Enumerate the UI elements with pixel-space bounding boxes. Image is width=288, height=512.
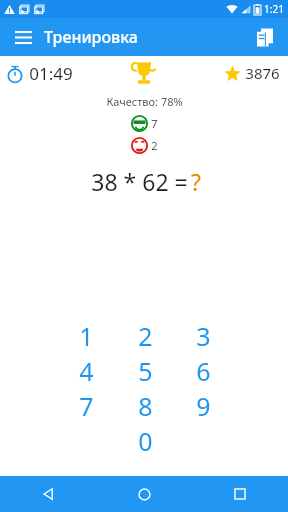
button[interactable]: 3 — [179, 318, 227, 353]
staticText: 9 — [196, 389, 211, 423]
staticText: 7 — [79, 389, 94, 423]
button[interactable]: Home — [96, 476, 192, 512]
staticText: 8 — [138, 389, 153, 423]
staticText: ? — [191, 166, 201, 197]
button[interactable]: Menu — [8, 22, 38, 52]
button[interactable]: 3876 — [224, 63, 280, 83]
button[interactable]: 01:49 — [6, 62, 73, 85]
staticText: 7 — [151, 116, 158, 131]
button[interactable]: Recent apps — [192, 476, 288, 512]
staticText: 2 — [151, 138, 158, 153]
button[interactable]: 7 — [131, 115, 158, 132]
button[interactable]: 5 — [121, 353, 169, 388]
button[interactable]: 2 — [121, 318, 169, 353]
staticText: 3876 — [245, 63, 280, 83]
button[interactable]: Reference book — [248, 21, 280, 53]
button[interactable]: 2 — [131, 137, 158, 154]
staticText: 5 — [138, 354, 153, 388]
staticText: 38 * 62 = — [88, 166, 191, 197]
staticText: 6 — [196, 354, 211, 388]
staticText: 1 — [79, 319, 94, 353]
button[interactable]: 9 — [179, 388, 227, 423]
staticText: 4 — [79, 354, 94, 388]
staticText: 3 — [196, 319, 211, 353]
button[interactable]: Trophy — [127, 58, 161, 88]
staticText: 1:21 — [264, 2, 284, 16]
button[interactable]: 1 — [62, 318, 110, 353]
button[interactable]: 0 — [121, 423, 169, 458]
staticText: 0 — [138, 424, 153, 458]
staticText: Тренировка — [44, 26, 138, 48]
button[interactable]: Back — [0, 476, 96, 512]
button[interactable]: 4 — [62, 353, 110, 388]
staticText: 2 — [138, 319, 153, 353]
button[interactable]: 8 — [121, 388, 169, 423]
staticText: Качество: 78% — [106, 94, 183, 109]
button[interactable]: 7 — [62, 388, 110, 423]
button[interactable]: 6 — [179, 353, 227, 388]
staticText: 01:49 — [29, 62, 73, 85]
